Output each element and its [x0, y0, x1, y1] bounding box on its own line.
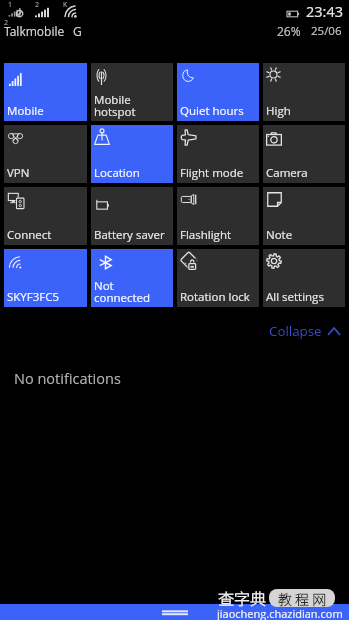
button[interactable]: Not connected [91, 249, 173, 307]
staticText: jiaocheng.chazidian.com [217, 606, 343, 620]
button[interactable]: Quiet hours [177, 63, 259, 121]
staticText: 查字典 [218, 586, 267, 609]
button[interactable]: Collapse [261, 319, 349, 343]
staticText: Collapse [269, 322, 322, 340]
button[interactable]: Flight mode [177, 125, 259, 183]
staticText: Mobile [7, 103, 44, 119]
staticText: Flight mode [180, 165, 244, 181]
staticText: 2 [35, 0, 40, 10]
staticText: SKYF3FC5 [7, 289, 60, 305]
staticText: Not connected [94, 278, 151, 305]
button[interactable]: SKYF3FC5 [4, 249, 87, 307]
staticText: High [266, 103, 291, 119]
button[interactable]: Mobile hotspot [91, 63, 173, 121]
staticText: VPN [7, 165, 30, 181]
button[interactable]: Battery saver [91, 187, 173, 245]
button[interactable]: All settings [263, 249, 345, 307]
button[interactable]: Hide navigation bar [162, 606, 188, 618]
staticText: 23:43 [306, 2, 344, 22]
button[interactable]: Flashlight [177, 187, 259, 245]
staticText: 1 [8, 0, 13, 10]
staticText: Quiet hours [180, 103, 244, 119]
button[interactable]: Connect [4, 187, 87, 245]
staticText: All settings [266, 289, 324, 305]
button[interactable]: Camera [263, 125, 345, 183]
staticText: Location [94, 165, 140, 181]
staticText: 26% [277, 23, 301, 39]
staticText: Battery saver [94, 227, 165, 243]
staticText: No notifications [14, 369, 121, 389]
staticText: Talkmobile [4, 23, 65, 39]
button[interactable]: Mobile [4, 63, 87, 121]
staticText: 25/06 [311, 23, 342, 39]
button[interactable]: High [263, 63, 345, 121]
button[interactable]: Location [91, 125, 173, 183]
staticText: Rotation lock [180, 289, 250, 305]
staticText: Camera [266, 165, 308, 181]
staticText: 2 [4, 18, 9, 28]
staticText: Connect [7, 227, 52, 243]
button[interactable]: Rotation lock [177, 249, 259, 307]
staticText: G [73, 23, 82, 39]
staticText: K [63, 0, 68, 10]
staticText: Flashlight [180, 227, 232, 243]
staticText: Note [266, 227, 293, 243]
staticText: 教 程 网 [278, 589, 327, 607]
staticText: Mobile hotspot [94, 92, 136, 119]
button[interactable]: VPN [4, 125, 87, 183]
button[interactable]: Note [263, 187, 345, 245]
